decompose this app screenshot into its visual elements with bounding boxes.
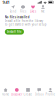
button[interactable]: Send xyxy=(8,5,18,13)
staticText: Me xyxy=(41,10,45,13)
button[interactable]: Discover xyxy=(11,88,22,96)
staticText: Inbox xyxy=(35,93,43,96)
button[interactable]: Home xyxy=(0,88,11,96)
button[interactable]: Install file xyxy=(5,29,24,35)
staticText: to get started with your setup xyxy=(5,23,47,26)
staticText: Create xyxy=(23,93,32,96)
button[interactable]: Profile xyxy=(45,88,56,96)
staticText: No files installed xyxy=(5,15,30,19)
button[interactable]: Inbox xyxy=(34,88,45,96)
staticText: 9:41 xyxy=(3,0,10,5)
staticText: Files xyxy=(20,10,26,13)
staticText: Install file xyxy=(7,30,22,33)
staticText: Home xyxy=(2,93,10,96)
staticText: Send xyxy=(9,10,16,13)
staticText: Profile xyxy=(45,93,55,96)
staticText: Install a file from the library xyxy=(5,19,43,23)
staticText: Likes xyxy=(30,10,36,13)
button[interactable]: Create xyxy=(22,88,34,96)
button[interactable]: Files xyxy=(18,5,28,13)
button[interactable]: Likes xyxy=(28,5,38,13)
button[interactable]: Me xyxy=(38,5,48,13)
staticText: Discover xyxy=(11,93,22,96)
